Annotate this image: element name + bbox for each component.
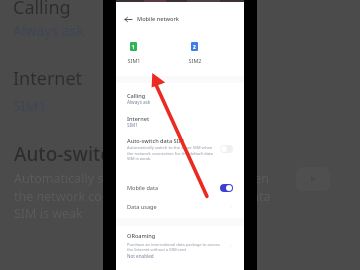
button[interactable]: Calling bbox=[116, 88, 244, 108]
staticText: Internet bbox=[127, 115, 150, 123]
button[interactable]: Internet bbox=[116, 111, 244, 131]
staticText: Purchase an international data package t… bbox=[127, 242, 221, 252]
staticText: Internet bbox=[13, 66, 83, 91]
staticText: Always ask bbox=[13, 21, 84, 40]
button[interactable]: 1 bbox=[113, 38, 155, 65]
staticText: 2 bbox=[193, 44, 196, 50]
staticText: 1 bbox=[132, 44, 135, 50]
button[interactable]: Data usage bbox=[116, 199, 244, 215]
staticText: Mobile data bbox=[127, 184, 159, 192]
staticText: SIM1 bbox=[13, 96, 47, 115]
staticText: Auto-switch data SIM bbox=[14, 141, 207, 167]
button[interactable]: ORoaming bbox=[116, 230, 244, 265]
staticText: Automatically switch to the other SIM wh… bbox=[127, 145, 213, 161]
staticText: Automatically switch to the other SIM wh… bbox=[14, 170, 282, 221]
staticText: SIM2 bbox=[174, 57, 216, 64]
staticText: Not enabled bbox=[127, 253, 154, 259]
staticText: Calling bbox=[13, 0, 71, 20]
staticText: ORoaming bbox=[127, 232, 156, 240]
staticText: Mobile network bbox=[137, 15, 179, 23]
button[interactable] bbox=[220, 184, 233, 192]
staticText: SIM1 bbox=[113, 57, 155, 64]
other: Open bbox=[227, 203, 234, 210]
button[interactable]: Back bbox=[124, 14, 135, 25]
staticText: Data usage bbox=[127, 203, 157, 211]
button[interactable]: Mobile data bbox=[116, 178, 244, 196]
staticText: Always ask bbox=[127, 99, 151, 105]
button[interactable] bbox=[220, 145, 233, 153]
other: Open bbox=[227, 242, 234, 249]
staticText: SIM1 bbox=[127, 122, 138, 128]
button[interactable]: 2 bbox=[174, 38, 216, 65]
staticText: Auto-switch data SIM bbox=[127, 137, 184, 145]
staticText: Calling bbox=[127, 92, 146, 100]
